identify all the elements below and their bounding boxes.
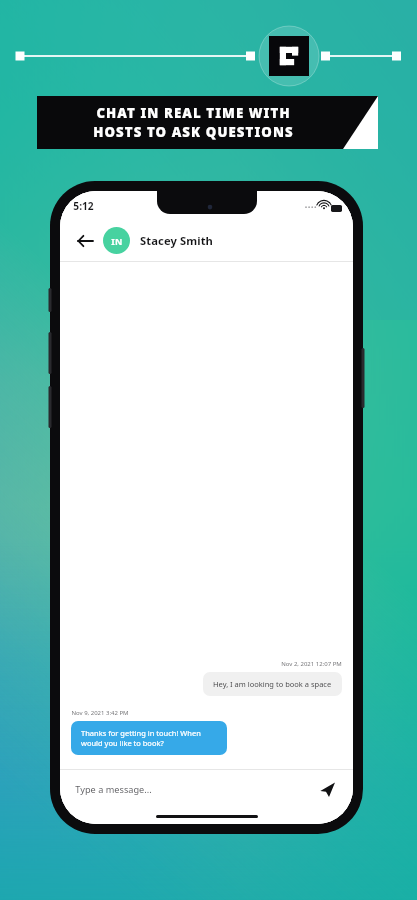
- staticText: IN: [111, 235, 123, 247]
- button[interactable]: Back: [71, 227, 98, 254]
- staticText: Thanks for getting in touch! When would …: [81, 728, 217, 748]
- staticText: 5:12: [73, 199, 94, 213]
- button[interactable]: IN: [103, 227, 213, 254]
- staticText: HOSTS TO ASK QUESTIONS: [93, 123, 294, 141]
- button[interactable]: Thanks for getting in touch! When would …: [71, 721, 227, 755]
- button[interactable]: Hey, I am looking to book a space: [203, 672, 342, 696]
- staticText: Type a message...: [75, 783, 152, 796]
- staticText: Nov 2, 2021 12:07 PM: [281, 660, 342, 668]
- button[interactable]: Send: [315, 777, 340, 802]
- button[interactable]: App logo: [269, 36, 309, 76]
- staticText: CHAT IN REAL TIME WITH: [96, 104, 291, 122]
- button[interactable]: Type a message...: [75, 770, 315, 809]
- staticText: Hey, I am looking to book a space: [213, 679, 332, 689]
- staticText: Stacey Smith: [140, 233, 213, 248]
- staticText: Nov 9, 2021 3:42 PM: [71, 709, 129, 717]
